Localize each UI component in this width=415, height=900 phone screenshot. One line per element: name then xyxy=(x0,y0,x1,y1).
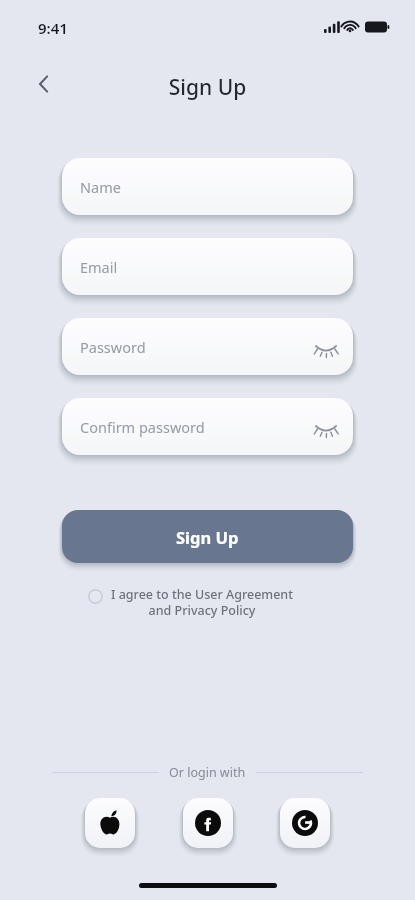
staticText: Confirm password xyxy=(80,417,205,437)
staticText: Email xyxy=(80,257,118,277)
staticText: Sign Up xyxy=(0,73,415,102)
button[interactable]: Sign Up xyxy=(62,510,353,563)
button[interactable]: Email xyxy=(62,238,353,295)
button[interactable]: I agree to the User Agreement and Privac… xyxy=(88,586,328,618)
button[interactable]: Show password xyxy=(313,334,339,360)
button[interactable]: Password xyxy=(62,318,353,375)
staticText: Password xyxy=(80,337,146,357)
button[interactable]: Back xyxy=(22,62,66,106)
button[interactable]: Confirm password xyxy=(62,398,353,455)
button[interactable]: Sign in with Apple xyxy=(85,798,135,848)
button[interactable]: Name xyxy=(62,158,353,215)
staticText: I agree to the User Agreement and Privac… xyxy=(111,586,293,618)
staticText: 9:41 xyxy=(38,18,68,38)
staticText: Name xyxy=(80,177,121,197)
button[interactable]: Sign in with Facebook xyxy=(183,798,233,848)
staticText: Sign Up xyxy=(176,526,239,548)
staticText: Or login with xyxy=(169,764,246,781)
button[interactable]: Sign in with Google xyxy=(280,798,330,848)
button[interactable]: Show password xyxy=(313,414,339,440)
